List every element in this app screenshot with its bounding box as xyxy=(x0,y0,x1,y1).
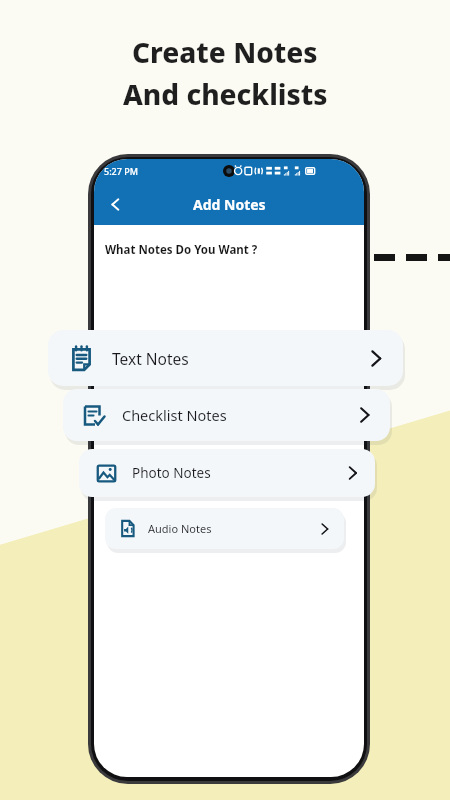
staticText: Checklist Notes xyxy=(122,405,227,425)
button[interactable]: Text Notes xyxy=(48,330,403,386)
staticText: Text Notes xyxy=(112,348,189,369)
staticText: Add Notes xyxy=(193,195,266,214)
staticText: 5:27 PM xyxy=(104,165,138,177)
button[interactable]: Checklist Notes xyxy=(63,389,390,441)
staticText: And checklists xyxy=(123,75,328,113)
button[interactable]: Back xyxy=(100,189,130,219)
staticText: What Notes Do You Want ? xyxy=(105,242,258,258)
staticText: Create Notes xyxy=(132,33,318,71)
staticText: Audio Notes xyxy=(148,521,212,536)
button[interactable]: Photo Notes xyxy=(79,449,375,497)
staticText: Photo Notes xyxy=(132,464,211,482)
button[interactable]: Audio Notes xyxy=(105,508,344,549)
